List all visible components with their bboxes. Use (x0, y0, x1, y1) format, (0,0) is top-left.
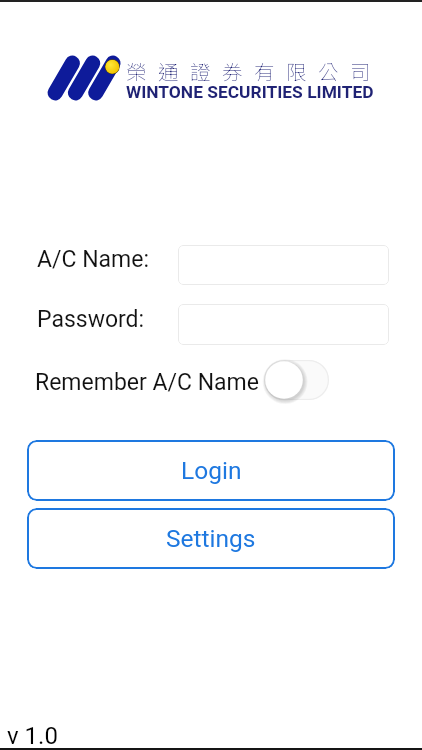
button[interactable]: Text input (178, 245, 389, 285)
staticText: 通 (158, 56, 179, 86)
staticText: Password: (37, 306, 145, 333)
staticText: 證 (190, 56, 211, 86)
staticText: 有 (254, 56, 275, 86)
staticText: 榮 (126, 56, 147, 86)
staticText: A/C Name: (37, 246, 150, 273)
staticText: 司 (350, 56, 371, 86)
staticText: v 1.0 (7, 722, 58, 750)
staticText: Remember A/C Name (35, 369, 259, 396)
staticText: 限 (286, 56, 307, 86)
button[interactable]: Remember A/C Name toggle (264, 360, 329, 400)
staticText: Login (181, 456, 242, 485)
button[interactable]: Settings (27, 508, 395, 569)
button[interactable]: Text input (178, 304, 389, 345)
button[interactable]: Login (27, 440, 395, 501)
staticText: Settings (166, 524, 256, 553)
staticText: 券 (222, 56, 243, 86)
staticText: 公 (318, 56, 339, 86)
staticText: WINTONE SECURITIES LIMITED (126, 82, 374, 102)
